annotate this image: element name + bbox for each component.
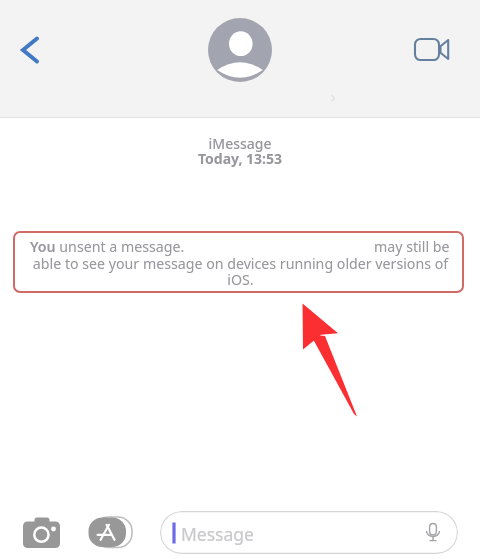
staticText: iMessage	[0, 134, 480, 153]
staticText: Today, 13:53	[0, 149, 480, 168]
staticText: You unsent a message.	[30, 237, 185, 256]
button[interactable]: Back	[7, 29, 51, 71]
button[interactable]: FaceTime video call	[410, 33, 456, 67]
staticText: Message	[181, 522, 254, 546]
button[interactable]: App Store	[84, 514, 134, 550]
button[interactable]: Message	[160, 511, 458, 554]
staticText: may still be	[374, 237, 450, 256]
staticText: iOS.	[15, 270, 466, 289]
button[interactable]: Camera	[20, 515, 64, 549]
button[interactable]: Dictate	[422, 522, 444, 544]
button[interactable]: Contact profile	[208, 18, 272, 82]
staticText: able to see your message on devices runn…	[15, 254, 466, 273]
